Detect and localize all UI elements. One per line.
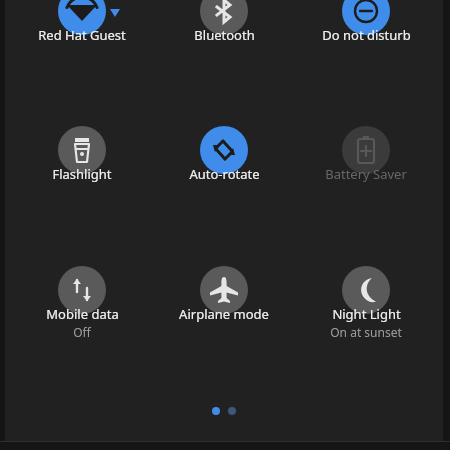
other: Night Light [342, 266, 390, 314]
other: Red Hat Guest [58, 0, 106, 35]
staticText: Red Hat Guest [38, 26, 126, 44]
staticText: Mobile data [46, 305, 119, 323]
staticText: Flashlight [52, 165, 112, 183]
button[interactable]: Airplane mode [159, 266, 289, 358]
staticText: Auto-rotate [189, 165, 260, 183]
staticText: Do not disturb [322, 26, 411, 44]
other: Airplane mode [200, 266, 248, 314]
button[interactable]: Flashlight [17, 126, 147, 218]
other: Battery Saver [342, 126, 390, 174]
staticText: Battery Saver [325, 165, 407, 183]
button[interactable]: Red Hat Guest [17, 0, 147, 79]
staticText: Airplane mode [179, 305, 269, 323]
button[interactable]: Do not disturb [301, 0, 431, 79]
button[interactable]: Auto-rotate [159, 126, 289, 218]
staticText: Off [73, 324, 91, 340]
other: Do not disturb [342, 0, 390, 35]
other: Auto-rotate [200, 126, 248, 174]
other: Flashlight [58, 126, 106, 174]
staticText: On at sunset [330, 324, 402, 340]
button[interactable]: Battery Saver [301, 126, 431, 218]
other: Bluetooth [200, 0, 248, 35]
other: Mobile data [58, 266, 106, 314]
button[interactable]: Night Light [301, 266, 431, 376]
staticText: Bluetooth [194, 26, 255, 44]
button[interactable]: Bluetooth [159, 0, 289, 79]
button[interactable]: Mobile data [17, 266, 147, 376]
staticText: Night Light [332, 305, 401, 323]
